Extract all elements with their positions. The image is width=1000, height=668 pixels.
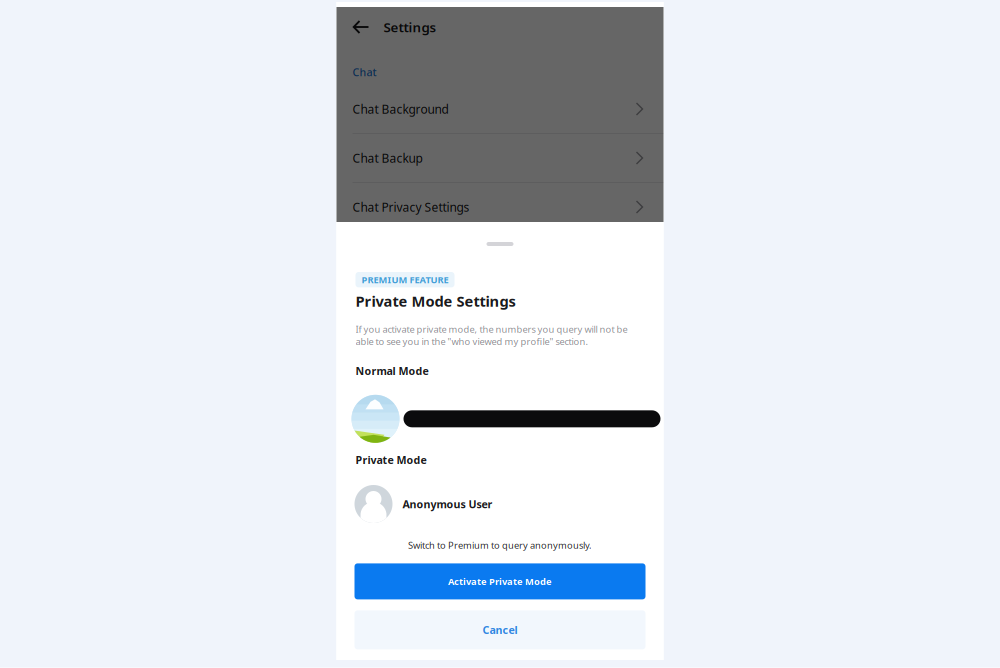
staticText: Chat	[352, 65, 376, 79]
staticText: Private Mode Settings	[355, 291, 515, 311]
staticText: PREMIUM FEATURE	[361, 273, 448, 286]
staticText: Chat Backup	[352, 150, 422, 166]
staticText: Anonymous User	[402, 497, 492, 511]
staticText: Cancel	[482, 623, 517, 637]
staticText: If you activate private mode, the number…	[355, 323, 627, 348]
button[interactable]: Chat Backup	[336, 134, 663, 182]
button[interactable]: Chat Background	[336, 85, 663, 133]
staticText: Switch to Premium to query anonymously.	[408, 539, 592, 551]
staticText: Chat Privacy Settings	[352, 199, 469, 215]
staticText: Chat Background	[352, 101, 448, 117]
button[interactable]: Chat Privacy Settings	[336, 183, 663, 231]
button[interactable]: Activate Private Mode	[354, 563, 645, 599]
staticText: Activate Private Mode	[448, 575, 552, 588]
staticText: Private Mode	[355, 453, 426, 467]
staticText: Normal Mode	[355, 364, 428, 378]
button[interactable]: Settings	[336, 7, 663, 47]
button[interactable]: Cancel	[354, 610, 645, 649]
staticText: Settings	[383, 18, 436, 36]
